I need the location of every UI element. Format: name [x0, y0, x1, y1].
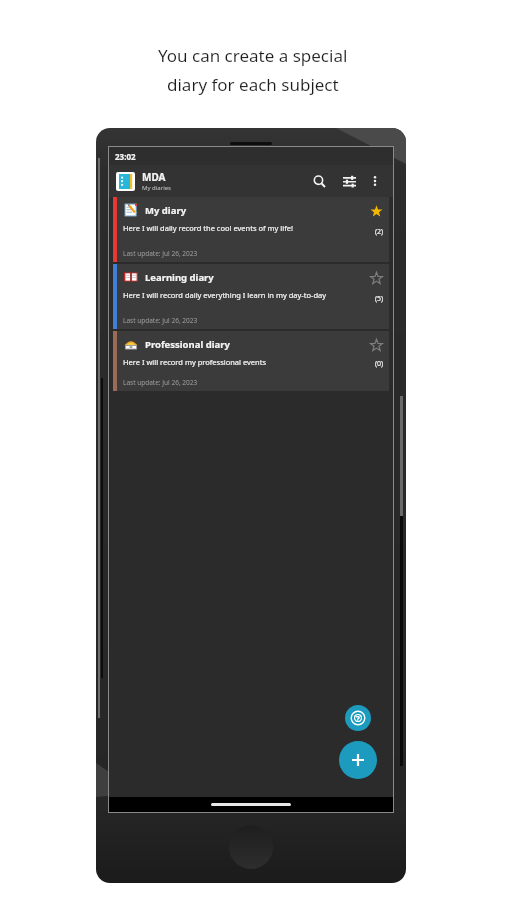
staticText: diary for each subject: [167, 73, 339, 96]
button[interactable]: Add diary: [339, 741, 377, 779]
staticText: Learning diary: [145, 271, 214, 284]
button[interactable]: Help: [345, 705, 371, 731]
staticText: My diaries: [142, 184, 171, 192]
button[interactable]: Learning diary: [113, 264, 389, 329]
staticText: You can create a special: [158, 44, 348, 67]
button[interactable]: Unfavorite: [367, 202, 385, 220]
staticText: MDA: [142, 170, 166, 184]
staticText: My diary: [145, 204, 187, 217]
staticText: (0): [375, 359, 384, 369]
button[interactable]: Search: [306, 168, 332, 194]
staticText: ?: [356, 713, 360, 724]
staticText: Here I will daily record the cool events…: [123, 223, 293, 233]
staticText: Here I will record daily everything I le…: [123, 290, 327, 300]
staticText: (2): [375, 227, 384, 237]
button[interactable]: Favorite: [367, 336, 385, 354]
button[interactable]: Favorite: [367, 269, 385, 287]
staticText: Last update: Jul 26, 2023: [123, 378, 198, 387]
staticText: Professional diary: [145, 338, 230, 351]
button[interactable]: Professional diary: [113, 331, 389, 391]
staticText: Last update: Jul 26, 2023: [123, 316, 198, 325]
staticText: Here I will record my professional event…: [123, 357, 267, 367]
button[interactable]: More options: [364, 170, 386, 192]
staticText: Last update: Jul 26, 2023: [123, 249, 198, 258]
staticText: (5): [375, 294, 384, 304]
button[interactable]: Sort and filter: [336, 168, 362, 194]
button[interactable]: My diary: [113, 197, 389, 262]
staticText: 23:02: [115, 151, 136, 162]
